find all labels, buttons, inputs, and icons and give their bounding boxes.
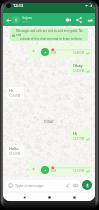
staticText: TODAY [44, 120, 54, 124]
button[interactable]: Hello [7, 145, 24, 157]
button[interactable]: Back [4, 16, 12, 24]
staticText: Hi [9, 88, 13, 93]
button[interactable]: Messages and calls are end-to-end encryp… [10, 28, 88, 41]
button[interactable]: Hi [7, 87, 24, 99]
button[interactable]: Voice message [82, 180, 92, 190]
button[interactable]: Back [20, 193, 28, 201]
staticText: 12:10 PM [9, 94, 21, 98]
staticText: 0:08 [51, 169, 57, 173]
staticText: Okay [73, 63, 83, 68]
staticText: 12:09 PM [73, 69, 85, 73]
staticText: 12:08 PM [73, 51, 85, 55]
staticText: 12:12 PM [9, 152, 21, 156]
button[interactable]: Type a message [6, 180, 81, 191]
staticText: 12:13 [13, 3, 24, 8]
staticText: outside of this chat can read or listen … [20, 37, 83, 41]
button[interactable]: 0:08 [29, 163, 92, 176]
button[interactable]: Call [84, 14, 95, 25]
staticText: Hello [9, 146, 19, 151]
button[interactable]: Share [73, 14, 84, 25]
staticText: online [22, 20, 30, 24]
staticText: 12:11 PM [73, 137, 85, 141]
button[interactable]: TODAY [41, 119, 57, 125]
staticText: 12:13 PM [73, 169, 85, 173]
staticText: Messages and calls are end-to-end encryp… [16, 29, 86, 37]
staticText: Sujon [22, 15, 32, 20]
staticText: Type a message [15, 183, 44, 188]
button[interactable]: Okay [70, 62, 92, 74]
button[interactable]: Video call [62, 14, 73, 25]
button[interactable]: 0:08 [29, 45, 92, 58]
button[interactable]: Recents [70, 193, 78, 201]
staticText: Hi [73, 131, 77, 136]
button[interactable]: Hi [70, 130, 92, 142]
staticText: 0:08 [51, 51, 57, 55]
button[interactable]: Home [45, 193, 53, 201]
